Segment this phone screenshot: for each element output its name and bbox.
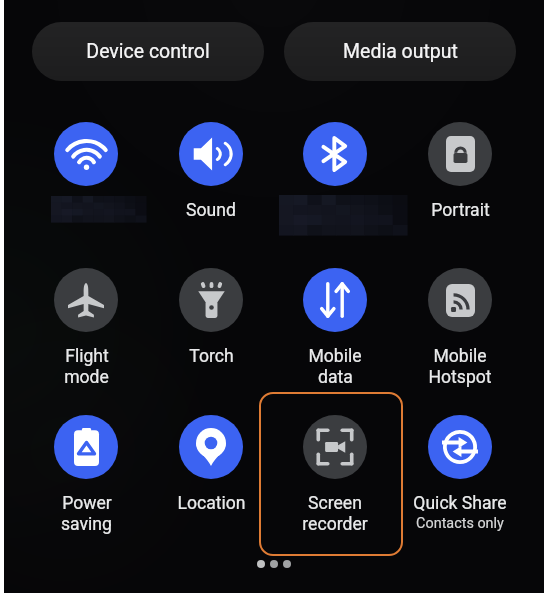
staticText: Power [62,493,112,514]
button[interactable]: Mobile data [303,268,367,332]
staticText: Screen [308,493,362,514]
button[interactable]: Portrait [428,122,492,186]
staticText: Mobile [308,346,362,367]
button[interactable]: Flight mode [54,268,118,332]
staticText: Flight [65,346,109,367]
button[interactable]: Media output [284,22,516,81]
staticText: recorder [302,514,368,535]
staticText: Hotspot [428,367,492,388]
staticText: Mobile [433,346,487,367]
staticText: Device control [86,40,210,63]
staticText: Portrait [431,200,490,221]
button[interactable]: Bluetooth [303,122,367,186]
staticText: Media output [343,40,458,63]
button[interactable]: Torch [179,268,243,332]
staticText: Torch [189,346,234,367]
button[interactable]: Power saving [54,415,118,479]
staticText: Sound [186,200,236,221]
staticText: Quick Share [413,493,507,514]
button[interactable]: Wi-Fi [54,122,118,186]
button[interactable]: Sound [179,122,243,186]
staticText: Contacts only [416,515,504,532]
staticText: saving [61,514,112,535]
button[interactable]: Screen recorder [303,415,367,479]
button[interactable]: Mobile Hotspot [428,268,492,332]
staticText: mode [64,367,109,388]
button[interactable]: Quick Share [428,415,492,479]
staticText: Location [177,493,246,514]
staticText: data [318,367,353,388]
button[interactable]: Device control [32,22,264,81]
button[interactable]: Location [179,415,243,479]
